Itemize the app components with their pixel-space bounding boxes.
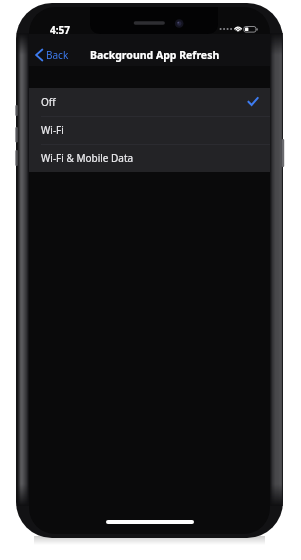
button[interactable]: Wi-Fi & Mobile Data [29,144,270,172]
staticText: Back [46,48,69,62]
staticText: 4:57 [50,23,70,37]
button[interactable]: Off [29,88,270,116]
other: Selected [248,97,258,106]
button[interactable]: Back [29,44,77,66]
button[interactable]: Wi-Fi [29,116,270,144]
staticText: Background App Refresh [90,48,220,62]
staticText: Wi-Fi [41,123,64,137]
staticText: Off [41,95,56,109]
staticText: Wi-Fi & Mobile Data [41,151,134,165]
